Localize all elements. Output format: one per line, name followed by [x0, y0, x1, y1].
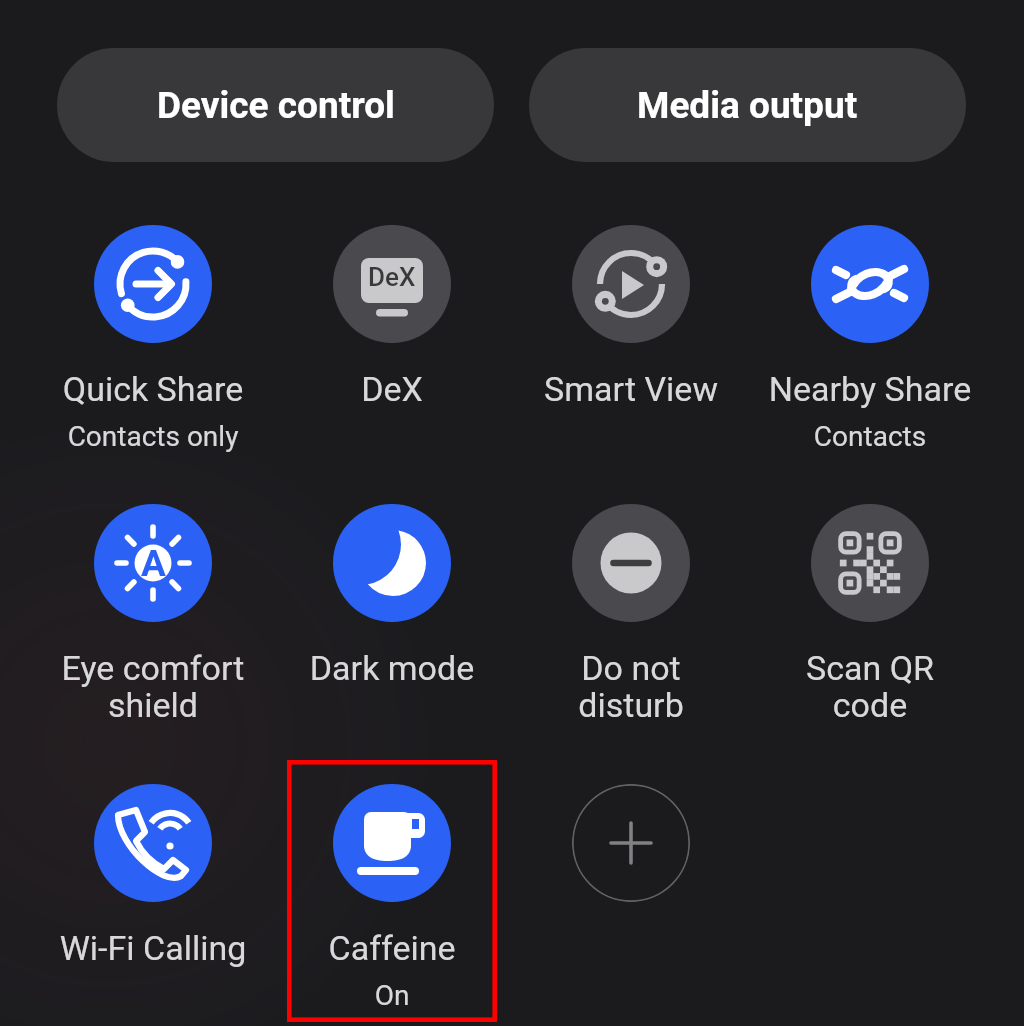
staticText: Scan QR code — [754, 648, 986, 725]
staticText: DeX — [368, 262, 416, 292]
button[interactable]: Quick Share — [37, 225, 269, 453]
staticText: DeX — [276, 369, 508, 409]
staticText: Wi-Fi Calling — [37, 928, 269, 968]
button[interactable]: Smart View — [515, 225, 747, 409]
staticText: Dark mode — [276, 648, 508, 688]
staticText: Quick Share — [37, 369, 269, 409]
button[interactable]: Nearby Share — [754, 225, 986, 453]
button[interactable]: Wi-Fi Calling — [37, 784, 269, 968]
staticText: Contacts — [754, 420, 986, 453]
button[interactable]: Dark mode — [276, 504, 508, 688]
staticText: A — [141, 542, 166, 585]
staticText: Device control — [157, 84, 395, 127]
staticText: Media output — [637, 84, 858, 127]
button[interactable]: Do not disturb — [515, 504, 747, 725]
staticText: Do not disturb — [515, 648, 747, 725]
button[interactable]: Device control — [57, 48, 494, 162]
button[interactable]: Media output — [529, 48, 966, 162]
staticText: Caffeine — [276, 928, 508, 968]
button[interactable]: Scan QR code — [754, 504, 986, 725]
button[interactable]: A — [37, 504, 269, 725]
staticText: Eye comfort shield — [37, 648, 269, 725]
button[interactable]: Add — [572, 784, 690, 902]
button[interactable]: DeX — [276, 225, 508, 409]
staticText: Contacts only — [37, 420, 269, 453]
staticText: Smart View — [515, 369, 747, 409]
staticText: Nearby Share — [754, 369, 986, 409]
staticText: On — [276, 979, 508, 1012]
button[interactable]: Caffeine — [276, 784, 508, 1012]
